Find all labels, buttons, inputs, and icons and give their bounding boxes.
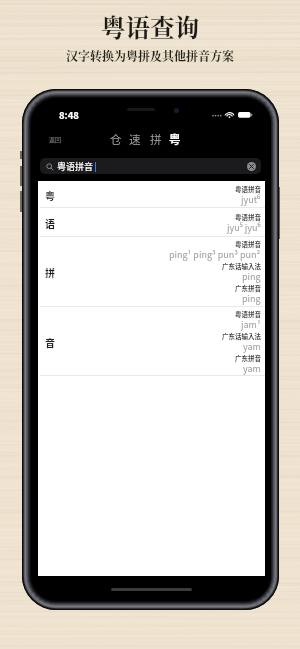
staticText: ping¹ ping³ pun³ pun²	[169, 248, 261, 261]
button[interactable]: 粤语拼音	[40, 158, 261, 174]
staticText: ping	[242, 270, 261, 283]
staticText: 8:48	[59, 108, 79, 122]
staticText: 汉字转换为粤拼及其他拼音方案	[66, 47, 235, 64]
staticText: 广东拼音	[235, 353, 261, 362]
staticText: 广东话输入法	[222, 261, 261, 270]
staticText: 粤语拼音	[235, 212, 261, 221]
staticText: 粤语拼音	[235, 309, 261, 318]
button[interactable]: 拼	[38, 237, 265, 307]
staticText: yam	[243, 340, 261, 353]
button[interactable]: 拼	[146, 131, 166, 147]
staticText: 广东拼音	[235, 283, 261, 292]
staticText: 粤语拼音	[57, 160, 94, 173]
button[interactable]: 速	[125, 131, 145, 147]
staticText: jyu⁵ jyu⁶	[227, 221, 261, 234]
staticText: 音	[45, 335, 55, 349]
button[interactable]: 仓	[106, 131, 126, 147]
staticText: 广东话输入法	[222, 331, 261, 340]
button[interactable]: 粤	[38, 181, 265, 208]
button[interactable]: 语	[38, 208, 265, 237]
staticText: 粤语查询	[101, 9, 199, 44]
staticText: 粤	[169, 131, 181, 147]
staticText: 仓	[110, 131, 122, 147]
button[interactable]: 粤	[165, 131, 185, 147]
staticText: 返回	[49, 135, 62, 144]
staticText: jam¹	[241, 318, 261, 331]
staticText: 粤	[45, 188, 55, 202]
staticText: 拼	[45, 265, 55, 279]
staticText: 速	[129, 131, 141, 147]
staticText: 语	[45, 216, 55, 230]
button[interactable]: Clear text	[247, 162, 256, 171]
staticText: 粤语拼音	[235, 184, 261, 193]
staticText: ping	[242, 292, 261, 305]
staticText: 粤语拼音	[235, 239, 261, 248]
staticText: 拼	[150, 131, 162, 147]
button[interactable]: 音	[38, 307, 265, 376]
staticText: yam	[243, 362, 261, 375]
staticText: jyut⁶	[241, 193, 261, 206]
button[interactable]: 返回	[47, 133, 64, 146]
